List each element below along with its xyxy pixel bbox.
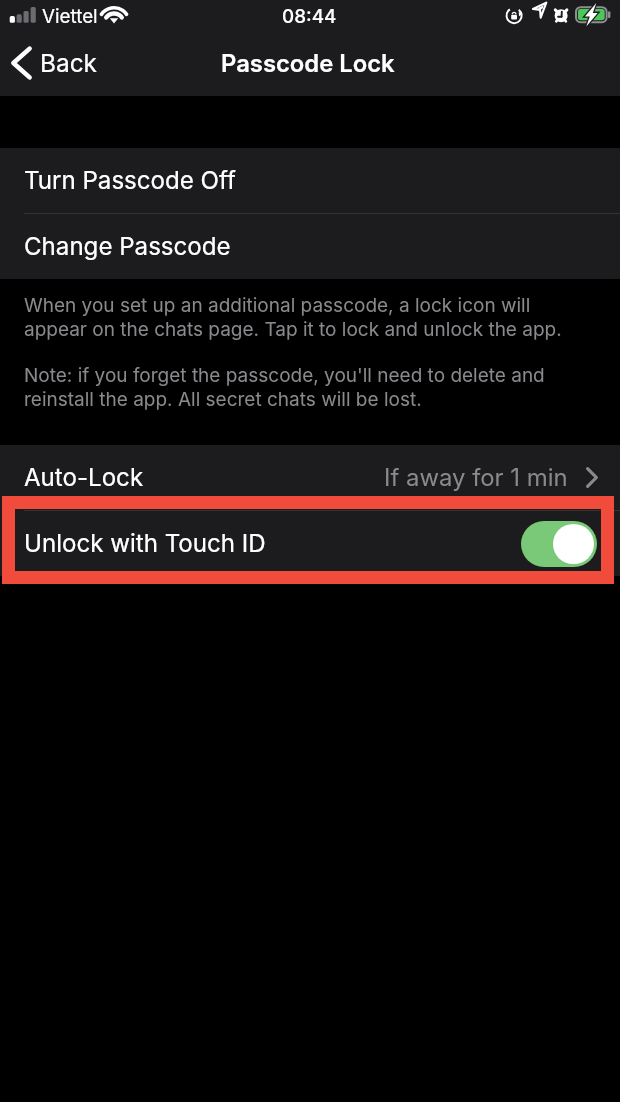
staticText: Auto-Lock — [24, 463, 144, 492]
staticText: If away for 1 min — [384, 463, 568, 492]
staticText: Turn Passcode Off — [24, 166, 236, 195]
button[interactable]: Turn Passcode Off — [0, 148, 620, 213]
staticText: When you set up an additional passcode, … — [24, 294, 584, 341]
button[interactable]: Change Passcode — [0, 214, 620, 279]
button[interactable]: Unlock with Touch ID — [0, 511, 620, 576]
staticText: 08:44 — [282, 5, 337, 28]
staticText: Back — [40, 48, 97, 78]
staticText: Unlock with Touch ID — [24, 529, 266, 558]
other: Unlock with Touch ID toggle — [521, 521, 597, 567]
staticText: Passcode Lock — [221, 49, 395, 78]
staticText: Viettel — [42, 5, 98, 28]
button[interactable]: Back — [0, 42, 111, 90]
staticText: Change Passcode — [24, 232, 231, 261]
staticText: Note: if you forget the passcode, you'll… — [24, 364, 584, 411]
button[interactable]: Auto-Lock — [0, 445, 620, 510]
